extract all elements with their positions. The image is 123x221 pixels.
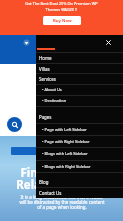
button[interactable]: • Blogs with Left Sidebar bbox=[36, 147, 123, 160]
button[interactable]: Home bbox=[36, 52, 123, 63]
button[interactable]: Services bbox=[36, 73, 123, 84]
button[interactable]: Buy Now bbox=[43, 16, 81, 25]
staticText: Villas bbox=[39, 66, 50, 72]
staticText: • Blogs with Left Sidebar bbox=[42, 151, 88, 156]
button[interactable]: Blog bbox=[36, 172, 123, 187]
staticText: Get The Best Deal 25% On Premium WP Them… bbox=[25, 1, 98, 12]
staticText: Blog bbox=[39, 179, 49, 185]
staticText: Pages bbox=[39, 114, 52, 120]
staticText: Services bbox=[39, 76, 56, 82]
staticText: It is a long established fact that a rea… bbox=[19, 194, 105, 210]
staticText: • Page with Left Sidebar bbox=[42, 127, 87, 132]
staticText: Find Your Best Relaxation Now bbox=[16, 165, 107, 192]
button[interactable]: • Page with Left Sidebar bbox=[36, 123, 123, 136]
staticText: • Page with Right Sidebar bbox=[42, 139, 90, 144]
button[interactable]: • About Us bbox=[36, 84, 123, 95]
button[interactable]: Contact Us bbox=[36, 187, 123, 199]
button[interactable]: Book Now bbox=[11, 147, 112, 155]
button[interactable]: Close menu bbox=[103, 37, 114, 48]
button[interactable]: Villas bbox=[36, 63, 123, 74]
staticText: Contact Us bbox=[39, 190, 62, 196]
button[interactable]: Search bbox=[7, 117, 22, 132]
staticText: Book Now bbox=[52, 149, 72, 154]
button[interactable]: • Destination bbox=[36, 95, 123, 106]
staticText: • Blogs with Right Sidebar bbox=[42, 164, 91, 169]
staticText: • About Us bbox=[42, 87, 62, 92]
staticText: Home bbox=[39, 55, 52, 61]
button[interactable]: Pages bbox=[36, 106, 123, 123]
button[interactable]: • Blogs with Right Sidebar bbox=[36, 160, 123, 173]
staticText: Buy Now bbox=[53, 18, 72, 24]
button[interactable]: • Page with Right Sidebar bbox=[36, 135, 123, 147]
staticText: • Destination bbox=[42, 98, 67, 103]
